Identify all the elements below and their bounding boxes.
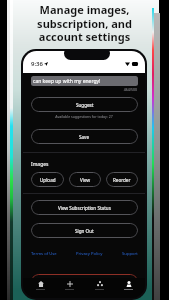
button[interactable]: Reorder [106,172,138,187]
staticText: View [80,177,91,183]
button[interactable]: Terms of Use [31,251,57,257]
button[interactable]: Suggest [31,97,138,112]
button[interactable]: Delete Account [31,274,138,289]
staticText: Sign Out [75,228,94,234]
button[interactable]: Sign Out [31,223,138,238]
staticText: Images [31,161,49,168]
button[interactable]: Support [122,251,138,257]
staticText: Manage images, subscription, and account… [10,2,159,44]
button[interactable]: Save [31,129,138,144]
button[interactable]: View Subscription Status [31,200,138,215]
staticText: Available suggestions for today: 27 [23,114,145,119]
button[interactable]: Community [87,278,111,298]
staticText: View Subscription Status [58,205,111,211]
button[interactable]: Upload [31,172,64,187]
staticText: Save [79,134,90,140]
button[interactable]: Profile [116,278,140,298]
button[interactable]: View [69,172,101,187]
staticText: Reorder [113,177,131,183]
button[interactable]: Home [28,278,52,298]
staticText: 464/500 [23,87,137,92]
button[interactable]: Add [57,278,81,298]
staticText: 9:36 [31,60,43,68]
staticText: Upload [40,177,56,183]
staticText: Suggest [76,102,94,108]
staticText: can keep up with my energy! [33,78,101,85]
staticText: Delete Account [69,279,101,285]
button[interactable]: Privacy Policy [76,251,103,257]
